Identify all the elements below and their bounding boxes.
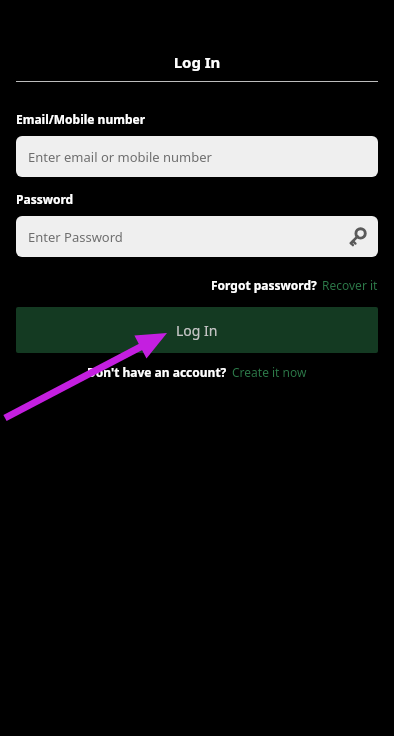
staticText: Recover it [322,277,378,293]
staticText: Log In [0,52,394,72]
button[interactable]: Log In [16,307,378,353]
button[interactable]: Recover it [322,277,378,293]
staticText: Enter email or mobile number [28,148,212,166]
button[interactable]: Show password [346,226,368,248]
staticText: Create it now [232,364,307,380]
button[interactable]: Create it now [232,364,307,380]
staticText: Enter Password [28,228,123,246]
button[interactable]: Enter Password [16,216,378,257]
staticText: Log In [176,321,218,340]
staticText: Don't have an account? [87,364,227,380]
staticText: Email/Mobile number [16,111,146,127]
staticText: Forgot password? [211,277,317,293]
button[interactable]: Enter email or mobile number [16,136,378,177]
staticText: Password [16,191,74,207]
